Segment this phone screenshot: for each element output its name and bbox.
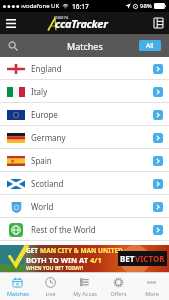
button[interactable]: All xyxy=(139,40,161,51)
staticText: Matches xyxy=(67,40,103,52)
staticText: 98% xyxy=(140,2,152,10)
button[interactable]: World xyxy=(0,195,169,218)
staticText: Live xyxy=(45,290,56,297)
button[interactable]: Rest of the World xyxy=(0,218,169,241)
staticText: 4/1 xyxy=(90,255,102,265)
staticText: BET xyxy=(120,253,135,264)
button[interactable]: Scotland xyxy=(0,172,169,195)
button[interactable]: My Accas xyxy=(68,273,101,300)
staticText: All xyxy=(146,41,154,50)
staticText: Scotland xyxy=(31,178,64,189)
button[interactable]: Search xyxy=(8,41,18,51)
staticText: Offers xyxy=(110,290,127,297)
staticText: Spain xyxy=(31,155,52,166)
button[interactable]: Offers xyxy=(102,273,135,300)
staticText: BOTH TO WIN AT xyxy=(26,255,90,265)
staticText: My Accas xyxy=(73,290,97,297)
staticText: Rest of the World xyxy=(31,224,96,235)
button[interactable]: Spain xyxy=(0,149,169,172)
staticText: World xyxy=(31,201,54,212)
staticText: WHEN YOU BET TODAY! xyxy=(26,265,84,272)
staticText: vodafone UK xyxy=(23,2,60,10)
button[interactable]: List view xyxy=(147,12,169,34)
staticText: England xyxy=(31,63,62,74)
button[interactable]: More xyxy=(135,273,168,300)
staticText: Matches xyxy=(7,290,29,297)
button[interactable]: England xyxy=(0,57,169,80)
button[interactable]: Matches xyxy=(1,273,34,300)
staticText: Germany xyxy=(31,132,66,143)
staticText: 16:17 xyxy=(72,2,89,11)
button[interactable]: Germany xyxy=(0,126,169,149)
staticText: More xyxy=(145,290,159,297)
staticText: TEAM FA xyxy=(54,15,69,20)
staticText: GET xyxy=(26,246,40,255)
staticText: VICTOR xyxy=(135,253,165,264)
button[interactable]: Europe xyxy=(0,103,169,126)
button[interactable]: Live xyxy=(34,273,67,300)
button[interactable]: Advertisement xyxy=(0,245,169,272)
button[interactable]: Italy xyxy=(0,80,169,103)
staticText: ccaTracker xyxy=(55,16,108,31)
staticText: Europe xyxy=(31,109,58,120)
button[interactable]: Menu xyxy=(0,12,22,34)
staticText: Italy xyxy=(31,86,48,97)
staticText: MAN CITY & MAN UNITED xyxy=(40,246,123,255)
